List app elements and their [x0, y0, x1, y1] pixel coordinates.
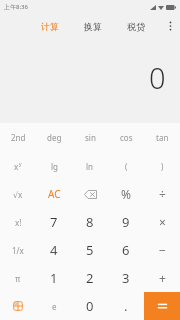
staticText: ): [161, 161, 164, 172]
staticText: 7: [50, 213, 58, 231]
staticText: 计算: [41, 21, 59, 32]
staticText: x: [14, 161, 19, 172]
button[interactable]: cos: [108, 123, 144, 152]
staticText: π: [15, 273, 21, 284]
staticText: 换算: [84, 21, 102, 32]
button[interactable]: 4: [36, 236, 72, 264]
button[interactable]: 税贷: [118, 17, 154, 36]
staticText: 上午8:36: [4, 3, 28, 11]
button[interactable]: Backspace: [72, 180, 108, 208]
staticText: 3: [122, 269, 130, 287]
button[interactable]: %: [108, 180, 144, 208]
staticText: AC: [48, 187, 61, 201]
button[interactable]: (: [108, 152, 144, 180]
staticText: −: [159, 242, 166, 258]
staticText: √x: [13, 189, 23, 200]
button[interactable]: 7: [36, 208, 72, 236]
staticText: ×: [159, 214, 166, 230]
staticText: ln: [86, 161, 94, 172]
staticText: 1: [50, 269, 58, 287]
staticText: 0: [149, 58, 166, 97]
button[interactable]: ×: [144, 208, 180, 236]
staticText: .: [124, 297, 128, 315]
button[interactable]: ÷: [144, 180, 180, 208]
button[interactable]: Switch keypad: [0, 292, 36, 320]
button[interactable]: lg: [36, 152, 72, 180]
button[interactable]: 计算: [32, 17, 68, 36]
staticText: 2nd: [11, 132, 26, 143]
staticText: ÷: [159, 186, 166, 202]
button[interactable]: 8: [72, 208, 108, 236]
button[interactable]: −: [144, 236, 180, 264]
button[interactable]: x: [0, 152, 36, 180]
staticText: +: [159, 270, 166, 286]
staticText: e: [52, 301, 57, 312]
staticText: deg: [47, 132, 62, 143]
button[interactable]: ln: [72, 152, 108, 180]
button[interactable]: 6: [108, 236, 144, 264]
button[interactable]: deg: [36, 123, 72, 152]
button[interactable]: sin: [72, 123, 108, 152]
staticText: 5: [86, 241, 94, 259]
button[interactable]: √x: [0, 180, 36, 208]
button[interactable]: 5: [72, 236, 108, 264]
button[interactable]: x!: [0, 208, 36, 236]
staticText: (: [125, 161, 128, 172]
staticText: 0: [86, 297, 94, 315]
button[interactable]: 3: [108, 264, 144, 292]
button[interactable]: π: [0, 264, 36, 292]
staticText: 2: [86, 269, 94, 287]
button[interactable]: Equals: [144, 292, 180, 320]
staticText: x!: [15, 217, 22, 228]
button[interactable]: 换算: [75, 17, 111, 36]
staticText: 税贷: [127, 21, 145, 32]
button[interactable]: 1/x: [0, 236, 36, 264]
staticText: 8: [86, 213, 94, 231]
button[interactable]: 2nd: [0, 123, 36, 152]
staticText: y: [19, 161, 22, 168]
staticText: 9: [122, 213, 130, 231]
button[interactable]: 2: [72, 264, 108, 292]
button[interactable]: e: [36, 292, 72, 320]
staticText: %: [121, 186, 131, 202]
staticText: 6: [122, 241, 130, 259]
button[interactable]: 1: [36, 264, 72, 292]
button[interactable]: .: [108, 292, 144, 320]
staticText: lg: [51, 161, 58, 172]
button[interactable]: tan: [144, 123, 180, 152]
staticText: sin: [85, 132, 96, 143]
staticText: tan: [156, 132, 169, 143]
button[interactable]: 9: [108, 208, 144, 236]
staticText: 1/x: [12, 245, 24, 256]
button[interactable]: 0: [72, 292, 108, 320]
button[interactable]: +: [144, 264, 180, 292]
staticText: 4: [50, 241, 58, 259]
button[interactable]: AC: [36, 180, 72, 208]
button[interactable]: ): [144, 152, 180, 180]
staticText: cos: [120, 132, 133, 143]
button[interactable]: More options: [160, 14, 180, 38]
